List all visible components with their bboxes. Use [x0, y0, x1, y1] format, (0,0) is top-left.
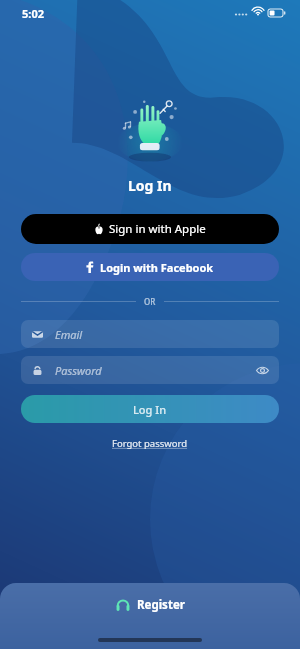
button[interactable]: Login with Facebook: [21, 253, 279, 281]
staticText: Password: [55, 363, 249, 378]
button[interactable]: Register: [106, 593, 195, 617]
staticText: Email: [55, 327, 269, 342]
button[interactable]: Password: [21, 356, 279, 384]
staticText: Register: [137, 597, 185, 613]
button[interactable]: Forgot password: [106, 435, 194, 452]
staticText: Sign in with Apple: [109, 221, 206, 237]
staticText: 5:02: [22, 6, 44, 21]
staticText: Login with Facebook: [100, 260, 214, 275]
staticText: Log In: [133, 402, 167, 417]
staticText: Log In: [128, 176, 172, 195]
button[interactable]: Log In: [21, 395, 279, 423]
button[interactable]: Email: [21, 320, 279, 348]
staticText: OR: [144, 296, 156, 307]
button[interactable]: Show password: [249, 357, 275, 383]
button[interactable]: Sign in with Apple: [21, 214, 279, 244]
staticText: Forgot password: [112, 437, 188, 450]
